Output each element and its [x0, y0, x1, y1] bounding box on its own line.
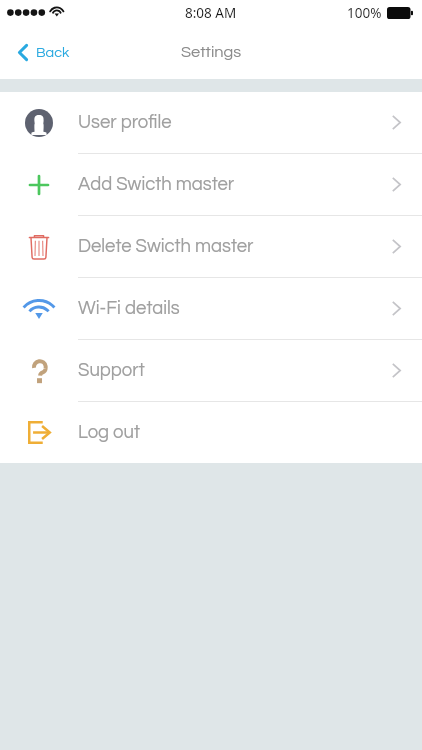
staticText: Add Swicth master: [78, 175, 235, 194]
staticText: User profile: [78, 113, 172, 132]
other: Support: [31, 359, 48, 382]
other: Wi-Fi: [25, 299, 53, 319]
staticText: Support: [78, 361, 145, 380]
staticText: Settings: [181, 44, 242, 61]
other: Delete: [29, 234, 49, 260]
button[interactable]: Add: [0, 154, 422, 215]
staticText: Delete Swicth master: [78, 237, 254, 256]
staticText: 100%: [347, 4, 382, 22]
other: User avatar: [25, 109, 53, 137]
staticText: Log out: [78, 423, 140, 442]
other: Log out: [28, 421, 50, 444]
staticText: Wi-Fi details: [78, 299, 180, 318]
staticText: Back: [36, 45, 70, 60]
button[interactable]: Wi-Fi: [0, 278, 422, 339]
staticText: 8:08 AM: [185, 4, 237, 22]
button[interactable]: Support: [0, 340, 422, 401]
button[interactable]: User avatar: [0, 92, 422, 153]
button[interactable]: Delete: [0, 216, 422, 277]
button[interactable]: Log out: [0, 402, 422, 463]
button[interactable]: Back: [0, 34, 84, 71]
other: Add: [28, 174, 50, 196]
